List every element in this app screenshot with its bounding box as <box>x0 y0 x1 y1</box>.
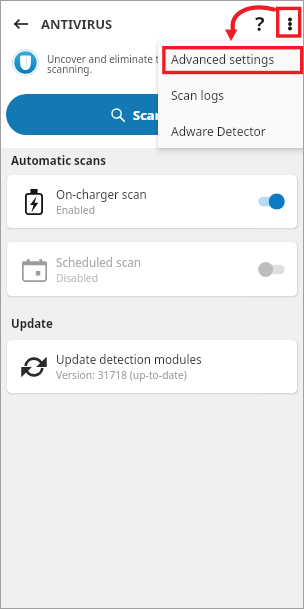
staticText: Scan now <box>133 106 194 124</box>
staticText: Update detection modules <box>56 351 202 367</box>
button[interactable]: Back <box>0 3 41 44</box>
staticText: Enabled <box>56 203 95 217</box>
button[interactable]: Scan logs <box>158 77 304 113</box>
button[interactable]: Adware Detector <box>158 113 304 148</box>
staticText: Automatic scans <box>11 153 106 169</box>
button[interactable]: Advanced settings <box>158 41 304 77</box>
staticText: Scan logs <box>171 87 225 103</box>
button[interactable]: Scheduled scan <box>7 242 297 296</box>
button[interactable]: Scan now <box>6 94 298 135</box>
staticText: ? <box>255 10 265 37</box>
button[interactable]: Help <box>244 8 276 40</box>
staticText: Adware Detector <box>171 123 266 139</box>
button[interactable]: Update detection modules <box>7 340 297 393</box>
staticText: ANTIVIRUS <box>41 15 113 33</box>
staticText: Uncover and eliminate threats with a qui… <box>47 52 248 76</box>
staticText: Update <box>11 316 53 332</box>
staticText: Disabled <box>56 271 99 285</box>
staticText: Version: 31718 (up-to-date) <box>56 368 187 382</box>
staticText: Scheduled scan <box>56 254 142 270</box>
button[interactable]: On-charger scan <box>7 175 297 228</box>
button[interactable]: More options <box>276 10 304 38</box>
staticText: On-charger scan <box>56 186 147 202</box>
staticText: Advanced settings <box>171 51 275 67</box>
